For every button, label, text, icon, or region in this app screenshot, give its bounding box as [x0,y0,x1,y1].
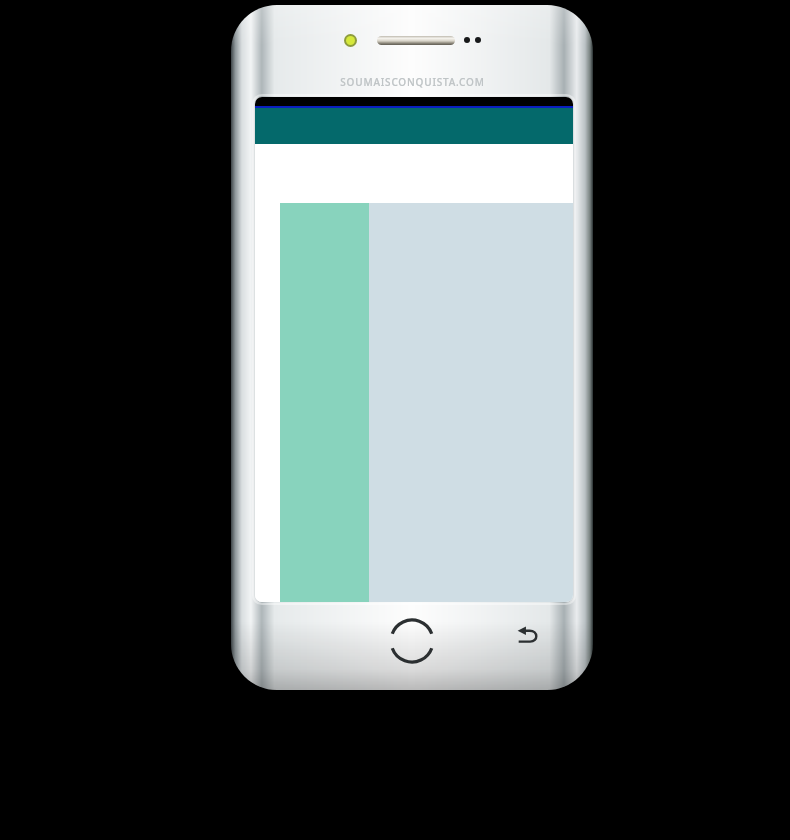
button[interactable]: Home [381,610,443,672]
staticText: SOUMAISCONQUISTA.COM [340,75,485,89]
button[interactable]: Back [507,618,547,658]
